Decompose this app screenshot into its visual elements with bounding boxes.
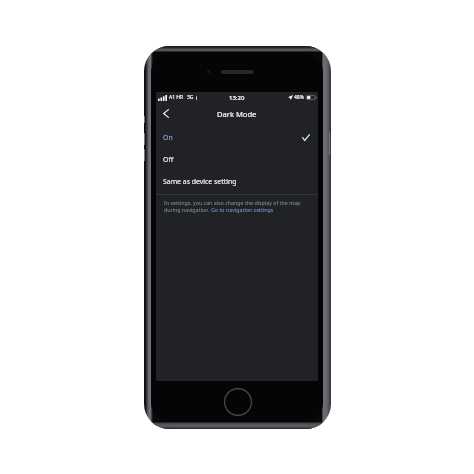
- staticText: On: [163, 133, 173, 142]
- button[interactable]: Off: [156, 148, 318, 170]
- staticText: Dark Mode: [217, 109, 257, 119]
- button[interactable]: Go to navigation settings: [211, 206, 274, 213]
- button[interactable]: Same as device setting: [156, 170, 318, 192]
- staticText: Off: [163, 155, 174, 164]
- button[interactable]: Back: [156, 103, 178, 124]
- staticText: A1 HR: [169, 94, 184, 101]
- staticText: 13:20: [229, 94, 245, 102]
- button[interactable]: On: [156, 126, 318, 148]
- staticText: In settings, you can also change the dis…: [164, 199, 301, 206]
- staticText: 48%: [294, 94, 304, 101]
- button[interactable]: Home: [223, 387, 253, 417]
- staticText: during navigation.: [164, 206, 210, 213]
- staticText: 3G: [187, 94, 194, 101]
- staticText: Same as device setting: [163, 177, 237, 186]
